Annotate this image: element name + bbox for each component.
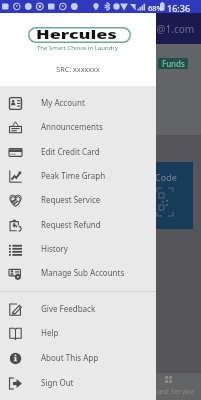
button[interactable]: Request Refund xyxy=(0,212,156,236)
button[interactable]: Funds xyxy=(158,58,188,69)
button[interactable]: About This App xyxy=(0,345,156,369)
staticText: Hercules xyxy=(36,25,117,41)
staticText: Announcements xyxy=(41,121,103,132)
staticText: About This App xyxy=(41,352,99,363)
staticText: Sign Out xyxy=(41,377,74,388)
button[interactable]: Code xyxy=(156,162,193,229)
staticText: SRC: xxxxxxx xyxy=(0,64,156,74)
staticText: Manage Sub Accounts xyxy=(41,267,125,278)
staticText: Funds xyxy=(162,58,185,69)
staticText: Edit Credit Card xyxy=(41,146,100,157)
staticText: History xyxy=(41,243,68,254)
button[interactable]: Edit Credit Card xyxy=(0,139,156,163)
staticText: Help xyxy=(41,327,59,338)
staticText: Peak Time Graph xyxy=(41,170,106,181)
button[interactable]: Announcements xyxy=(0,114,156,138)
button[interactable]: Manage Sub Accounts xyxy=(0,260,156,284)
button[interactable]: Give Feedback xyxy=(0,296,156,320)
staticText: My Account xyxy=(41,97,85,108)
button[interactable]: Sign Out xyxy=(0,370,156,394)
staticText: Request Refund xyxy=(41,219,101,230)
staticText: Code xyxy=(155,171,177,183)
button[interactable]: My Account xyxy=(0,90,156,114)
staticText: Give Feedback xyxy=(41,303,96,314)
button[interactable]: Request Service xyxy=(0,187,156,211)
staticText: 68% xyxy=(148,3,163,13)
staticText: S@1.com xyxy=(151,22,195,36)
staticText: Request Service xyxy=(41,194,101,205)
button[interactable]: Help xyxy=(0,320,156,344)
staticText: uest Service xyxy=(155,387,195,397)
button[interactable]: Peak Time Graph xyxy=(0,163,156,187)
staticText: 16:36 xyxy=(167,2,191,14)
staticText: The Smart Choice in Laundry xyxy=(0,44,155,52)
button[interactable]: History xyxy=(0,236,156,260)
